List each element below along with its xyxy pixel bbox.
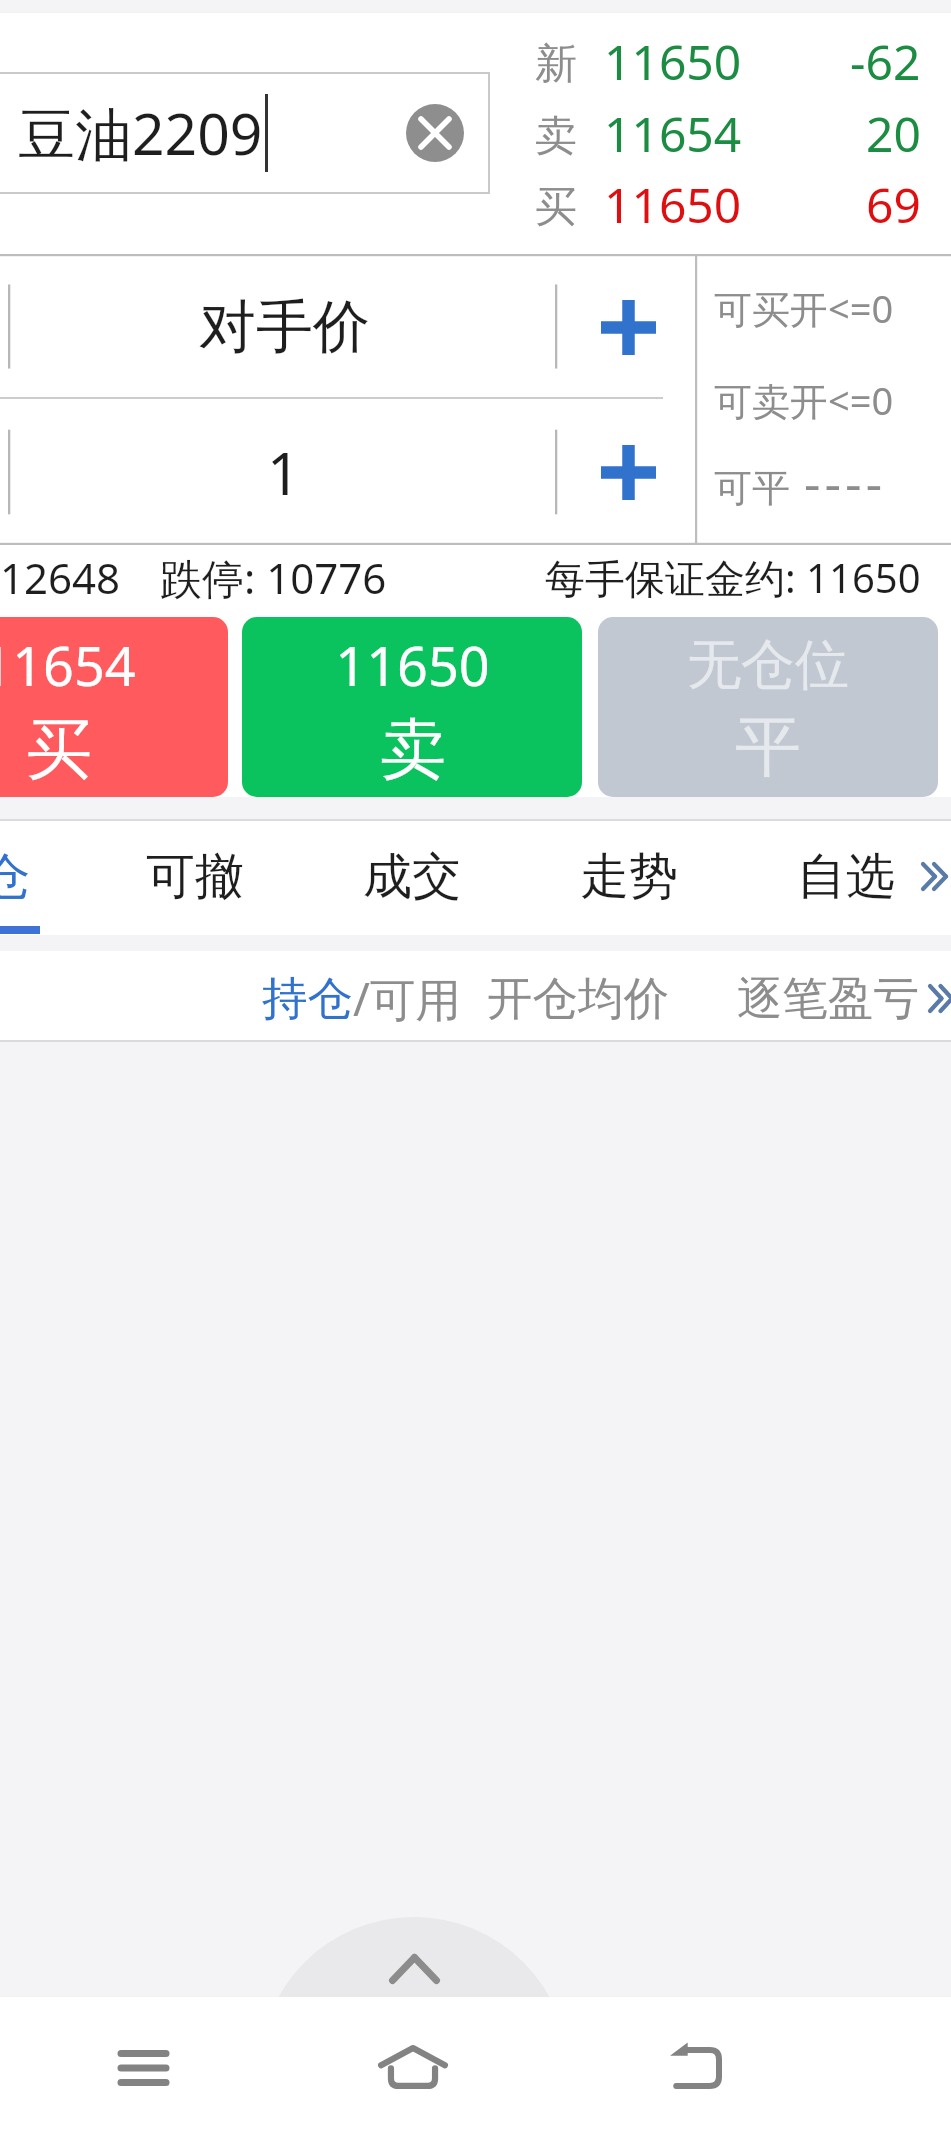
button[interactable]: 开仓均价: [487, 970, 669, 1027]
staticText: 平: [735, 705, 801, 788]
button[interactable]: Back: [630, 2001, 762, 2130]
staticText: 11650: [604, 29, 742, 91]
staticText: 可卖开<=0: [714, 374, 894, 426]
staticText: 卖: [380, 708, 446, 791]
button[interactable]: Increase: [592, 291, 664, 363]
staticText: 新: [535, 38, 577, 91]
button[interactable]: 自选: [760, 819, 932, 935]
staticText: 11654: [604, 101, 742, 163]
staticText: 卖: [535, 110, 577, 163]
staticText: 买: [535, 181, 577, 234]
staticText: 跌停: 10776: [160, 549, 387, 606]
staticText: /可用: [353, 967, 461, 1029]
button[interactable]: 新: [0, 29, 951, 91]
staticText: 无仓位: [687, 631, 849, 699]
button[interactable]: 走势: [543, 819, 715, 935]
button[interactable]: 持仓: [262, 970, 353, 1027]
staticText: 成交: [363, 846, 461, 908]
button[interactable]: 卖: [0, 101, 951, 163]
staticText: 11654: [0, 628, 136, 702]
staticText: 可平: [714, 464, 790, 512]
staticText: 豆油2209: [18, 94, 263, 172]
staticText: 买: [26, 708, 92, 791]
button[interactable]: 1: [0, 399, 951, 545]
button[interactable]: 仓: [0, 819, 40, 935]
button[interactable]: 买: [0, 172, 951, 234]
button[interactable]: Home: [347, 2000, 479, 2130]
button[interactable]: 可撤: [109, 819, 281, 935]
staticText: 仓: [0, 846, 30, 908]
staticText: 12648: [0, 549, 121, 606]
button[interactable]: 无仓位: [598, 617, 938, 797]
staticText: 11650: [335, 628, 490, 702]
staticText: 69: [866, 172, 921, 234]
button[interactable]: 11654: [0, 617, 228, 797]
button[interactable]: 豆油2209: [0, 72, 490, 194]
button[interactable]: Recent apps: [77, 2001, 209, 2130]
staticText: 可撤: [146, 846, 244, 908]
staticText: 1: [267, 433, 301, 512]
button[interactable]: 成交: [326, 819, 498, 935]
staticText: 自选: [797, 846, 895, 908]
staticText: 20: [866, 101, 921, 163]
button[interactable]: More columns: [929, 968, 951, 1028]
staticText: -62: [850, 29, 921, 91]
staticText: 对手价: [199, 291, 370, 363]
button[interactable]: 11650: [242, 617, 582, 797]
staticText: 走势: [580, 846, 678, 908]
staticText: 每手保证金约: 11650: [545, 550, 921, 605]
button[interactable]: Increase: [592, 436, 664, 508]
button[interactable]: 逐笔盈亏: [737, 970, 919, 1027]
button[interactable]: Clear: [406, 104, 464, 162]
staticText: 11650: [604, 172, 742, 234]
button[interactable]: More tabs: [922, 846, 951, 906]
button[interactable]: Expand panel: [259, 1917, 569, 2130]
staticText: 可买开<=0: [714, 282, 894, 334]
button[interactable]: 对手价: [0, 254, 951, 399]
